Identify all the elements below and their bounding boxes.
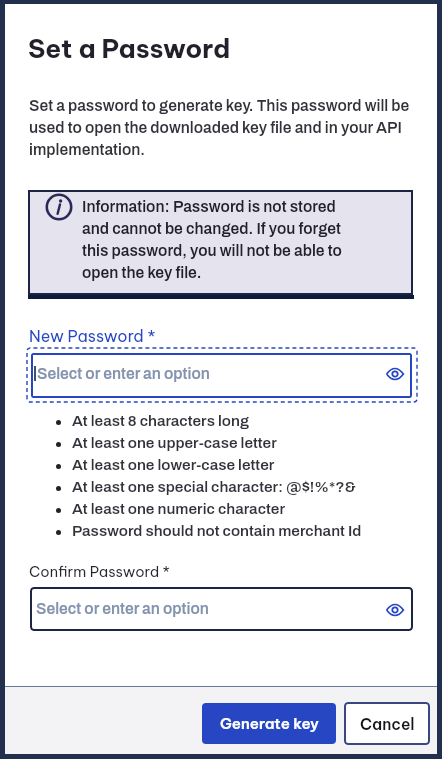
button[interactable]: [30, 587, 413, 631]
staticText: At least one special character: @$!%*?&: [72, 479, 356, 496]
staticText: At least one upper-case letter: [72, 435, 277, 452]
button[interactable]: Cancel: [344, 702, 430, 745]
button[interactable]: Generate key: [202, 703, 336, 744]
staticText: Set a password to generate key. This pas…: [29, 97, 410, 158]
staticText: At least 8 characters long: [72, 413, 249, 430]
staticText: At least one numeric character: [72, 501, 285, 518]
staticText: Cancel: [360, 714, 415, 734]
staticText: Password should not contain merchant Id: [72, 523, 362, 540]
staticText: Set a Password: [28, 32, 231, 65]
staticText: Select or enter an option: [37, 365, 210, 382]
staticText: Information: Password is not stored and …: [82, 198, 342, 281]
staticText: Confirm Password *: [29, 562, 170, 580]
staticText: At least one lower-case letter: [72, 457, 275, 474]
staticText: Generate key: [220, 714, 319, 733]
button[interactable]: [31, 353, 412, 398]
staticText: New Password *: [29, 326, 156, 346]
staticText: Select or enter an option: [36, 600, 209, 617]
